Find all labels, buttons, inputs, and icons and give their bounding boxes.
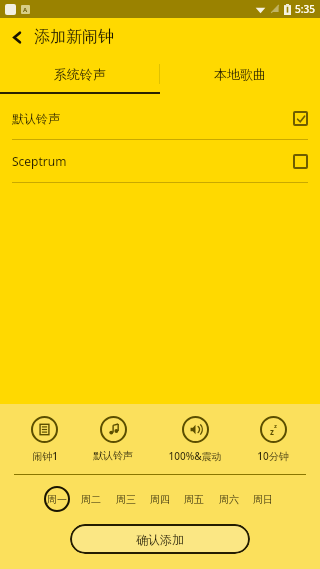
- staticText: 默认铃声: [93, 449, 133, 462]
- button[interactable]: 100%&震动: [164, 414, 226, 465]
- button[interactable]: 周四: [147, 486, 173, 512]
- staticText: A: [23, 6, 28, 14]
- button[interactable]: 周五: [181, 486, 207, 512]
- staticText: 周三: [116, 493, 136, 506]
- staticText: 系统铃声: [54, 66, 106, 82]
- staticText: 5:35: [295, 2, 315, 16]
- staticText: 周四: [150, 493, 170, 506]
- staticText: 周一: [47, 493, 67, 506]
- staticText: z: [270, 426, 274, 437]
- staticText: 默认铃声: [12, 111, 293, 126]
- button[interactable]: z: [253, 414, 293, 465]
- staticText: 本地歌曲: [214, 66, 266, 82]
- button[interactable]: 本地歌曲: [160, 56, 320, 92]
- button[interactable]: Back: [0, 20, 34, 54]
- button[interactable]: 系统铃声: [0, 56, 159, 92]
- button[interactable]: 周六: [216, 486, 242, 512]
- staticText: 100%&震动: [168, 449, 222, 463]
- staticText: Sceptrum: [12, 153, 293, 169]
- staticText: 确认添加: [136, 532, 184, 547]
- staticText: 周日: [253, 493, 273, 506]
- staticText: 周五: [184, 493, 204, 506]
- button[interactable]: 周一: [44, 486, 70, 512]
- staticText: 周六: [219, 493, 239, 506]
- button[interactable]: 闹钟1: [27, 414, 62, 465]
- staticText: 闹钟1: [32, 449, 58, 463]
- button[interactable]: 周二: [78, 486, 104, 512]
- button[interactable]: 周日: [250, 486, 276, 512]
- button[interactable]: 确认添加: [70, 524, 250, 554]
- button[interactable]: Sceptrum: [0, 140, 320, 182]
- staticText: 10分钟: [257, 449, 289, 463]
- staticText: 周二: [81, 493, 101, 506]
- button[interactable]: 默认铃声: [0, 97, 320, 139]
- staticText: z: [274, 422, 277, 430]
- button[interactable]: 周三: [113, 486, 139, 512]
- staticText: 添加新闹钟: [34, 27, 114, 47]
- button[interactable]: 默认铃声: [89, 414, 137, 464]
